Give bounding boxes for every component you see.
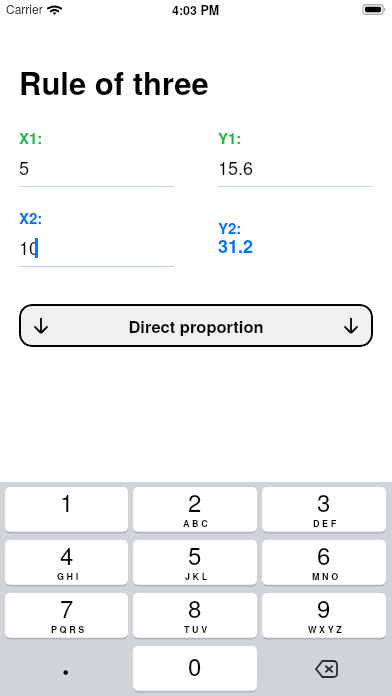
- button[interactable]: 4: [5, 540, 128, 586]
- staticText: PQRS: [51, 623, 87, 636]
- button[interactable]: [5, 646, 128, 692]
- button[interactable]: Direct proportion: [19, 304, 373, 347]
- staticText: X1:: [19, 127, 43, 148]
- button[interactable]: X1:: [19, 127, 174, 187]
- staticText: X2:: [19, 207, 43, 228]
- staticText: WXYZ: [308, 623, 345, 636]
- staticText: 2: [188, 484, 202, 518]
- staticText: MNO: [312, 570, 341, 583]
- staticText: Carrier: [6, 0, 43, 17]
- staticText: Y1:: [218, 127, 242, 148]
- button[interactable]: 2: [133, 487, 257, 533]
- staticText: ABC: [183, 517, 211, 530]
- staticText: 10: [19, 234, 40, 256]
- staticText: Direct proportion: [48, 314, 344, 338]
- button[interactable]: 3: [262, 487, 386, 533]
- staticText: 7: [60, 590, 74, 624]
- button[interactable]: 0: [133, 646, 257, 692]
- button[interactable]: X2:: [19, 207, 174, 267]
- button[interactable]: Delete: [262, 646, 386, 692]
- button[interactable]: 1: [5, 487, 128, 533]
- button[interactable]: 7: [5, 593, 128, 639]
- staticText: 8: [188, 590, 202, 624]
- staticText: Y2:: [218, 217, 242, 238]
- staticText: 9: [317, 590, 331, 624]
- staticText: GHI: [57, 570, 81, 583]
- staticText: 3: [317, 484, 331, 518]
- staticText: 15.6: [218, 154, 254, 176]
- staticText: 5: [188, 537, 202, 571]
- staticText: TUV: [184, 623, 210, 636]
- staticText: Rule of three: [19, 60, 209, 104]
- button[interactable]: 6: [262, 540, 386, 586]
- staticText: 4:03 PM: [172, 1, 220, 19]
- staticText: 6: [317, 537, 331, 571]
- staticText: JKL: [185, 570, 210, 583]
- button[interactable]: Y2:: [218, 217, 373, 264]
- staticText: 1: [60, 484, 74, 518]
- staticText: 31.2: [218, 233, 254, 259]
- staticText: 5: [19, 154, 30, 176]
- button[interactable]: 9: [262, 593, 386, 639]
- button[interactable]: 5: [133, 540, 257, 586]
- staticText: 0: [188, 648, 202, 682]
- staticText: DEF: [313, 517, 339, 530]
- button[interactable]: Y1:: [218, 127, 373, 187]
- button[interactable]: 8: [133, 593, 257, 639]
- staticText: 4: [60, 537, 74, 571]
